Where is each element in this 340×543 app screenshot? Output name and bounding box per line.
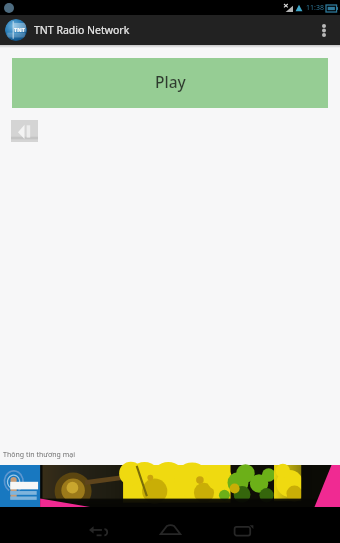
button[interactable] xyxy=(0,465,340,507)
staticText: 11:38 xyxy=(306,3,324,13)
staticText: Thông tin thương mại xyxy=(3,450,75,460)
staticText: Play xyxy=(155,71,186,92)
button[interactable]: Broken image xyxy=(11,120,38,142)
button[interactable]: Recent apps xyxy=(221,507,266,543)
button[interactable]: Back xyxy=(76,507,121,543)
button[interactable]: Home xyxy=(148,507,193,543)
staticText: TNT Radio Network xyxy=(34,23,130,37)
staticText: TNT xyxy=(14,26,25,33)
button[interactable]: More options xyxy=(308,15,340,45)
button[interactable]: Play xyxy=(12,58,328,108)
